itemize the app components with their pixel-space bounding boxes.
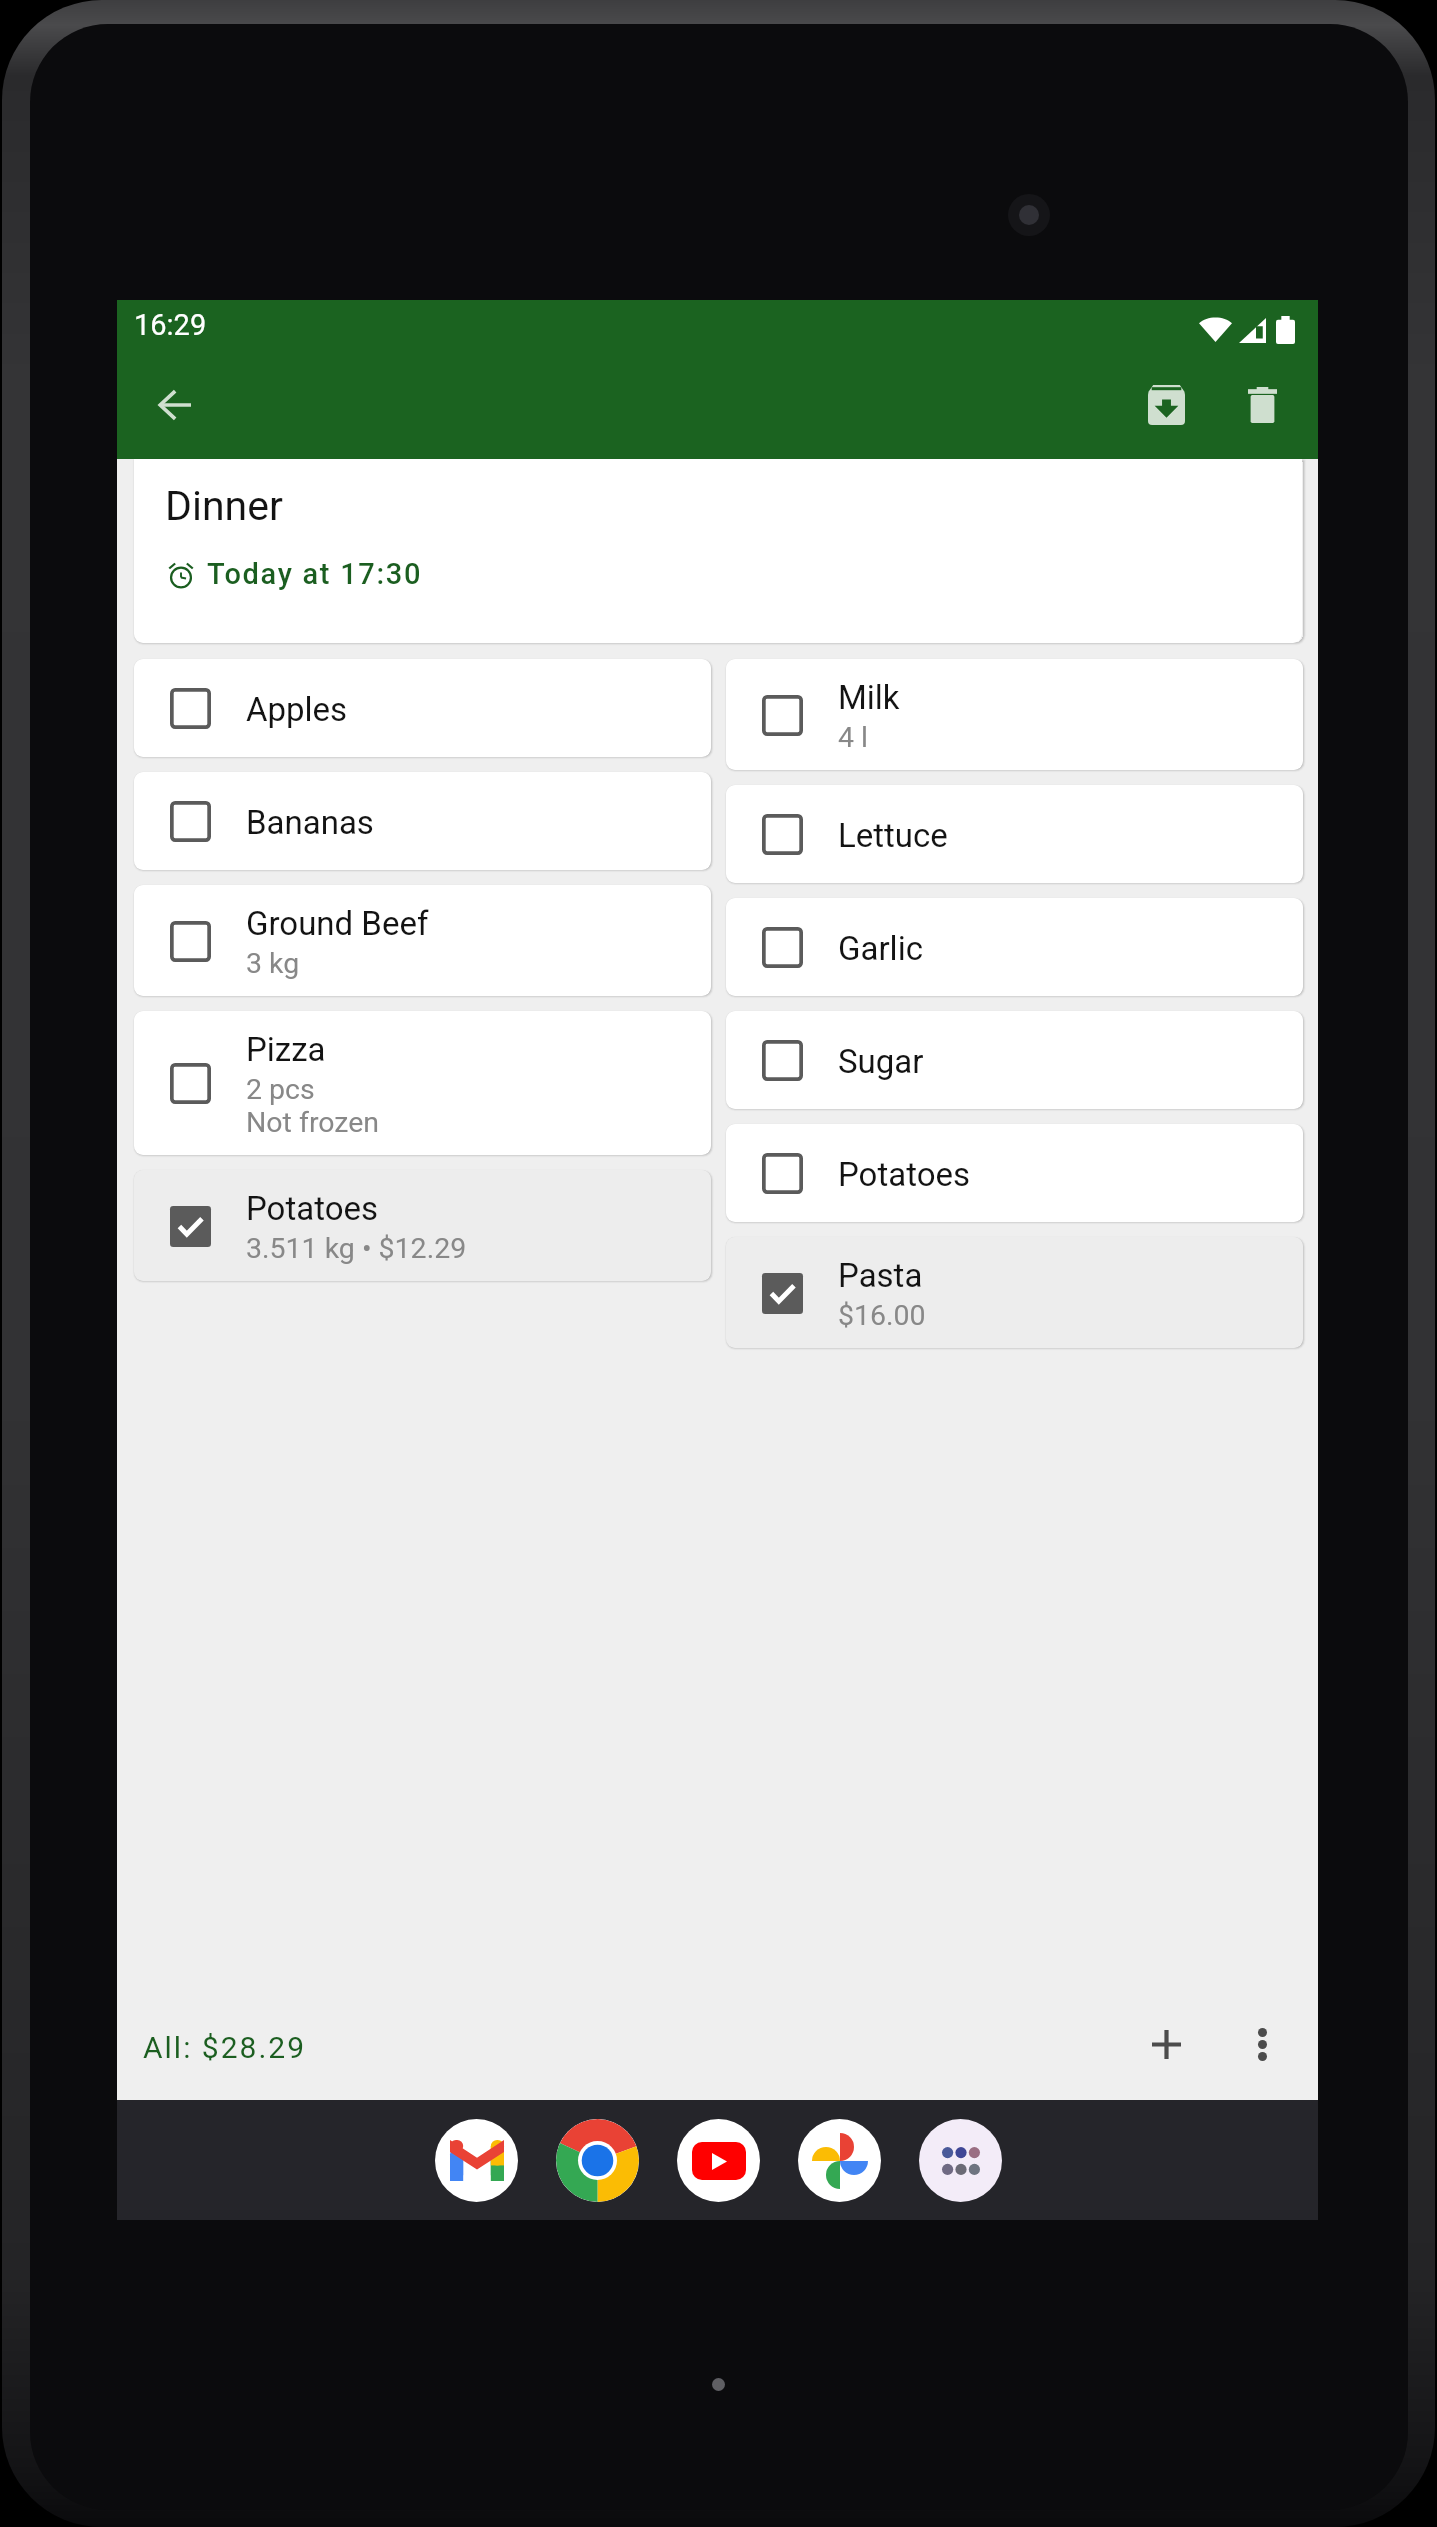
button[interactable]: Google Photos: [798, 2119, 881, 2202]
button[interactable]: Ground Beef: [134, 885, 711, 996]
staticText: 2 pcs: [246, 1073, 315, 1106]
button[interactable]: Delete: [1222, 365, 1302, 445]
staticText: $16.00: [838, 1299, 926, 1332]
staticText: Apples: [246, 690, 348, 729]
staticText: 16:29: [134, 308, 207, 342]
staticText: Garlic: [838, 929, 923, 968]
staticText: All: $28.29: [143, 2030, 307, 2065]
button[interactable]: YouTube: [677, 2119, 760, 2202]
button[interactable]: Potatoes: [726, 1124, 1303, 1222]
button[interactable]: Gmail: [435, 2119, 518, 2202]
button[interactable]: Garlic: [726, 898, 1303, 996]
staticText: Dinner: [165, 482, 283, 530]
button[interactable]: Potatoes: [134, 1170, 711, 1281]
button[interactable]: Sugar: [726, 1011, 1303, 1109]
button[interactable]: Archive: [1126, 365, 1206, 445]
staticText: Pasta: [838, 1256, 923, 1295]
staticText: Potatoes: [838, 1155, 970, 1194]
button[interactable]: Lettuce: [726, 785, 1303, 883]
staticText: Potatoes: [246, 1189, 378, 1228]
button[interactable]: More options: [1222, 2004, 1302, 2084]
button[interactable]: Dinner: [134, 459, 1302, 643]
staticText: Pizza: [246, 1030, 326, 1069]
button[interactable]: Pizza: [134, 1011, 711, 1155]
button[interactable]: Add item: [1126, 2004, 1206, 2084]
staticText: Not frozen: [246, 1106, 380, 1139]
staticText: Today at 17:30: [207, 557, 423, 591]
button[interactable]: Pasta: [726, 1237, 1303, 1348]
staticText: 3.511 kg • $12.29: [246, 1232, 467, 1265]
staticText: Milk: [838, 678, 900, 717]
staticText: 4 l: [838, 721, 869, 754]
staticText: Sugar: [838, 1042, 924, 1081]
button[interactable]: Bananas: [134, 772, 711, 870]
staticText: Bananas: [246, 803, 374, 842]
staticText: Ground Beef: [246, 904, 429, 943]
staticText: Lettuce: [838, 816, 948, 855]
button[interactable]: Milk: [726, 659, 1303, 770]
button[interactable]: Chrome: [556, 2119, 639, 2202]
button[interactable]: Navigate up: [134, 365, 214, 445]
button[interactable]: Apples: [134, 659, 711, 757]
staticText: 3 kg: [246, 947, 300, 980]
button[interactable]: All apps: [919, 2119, 1002, 2202]
